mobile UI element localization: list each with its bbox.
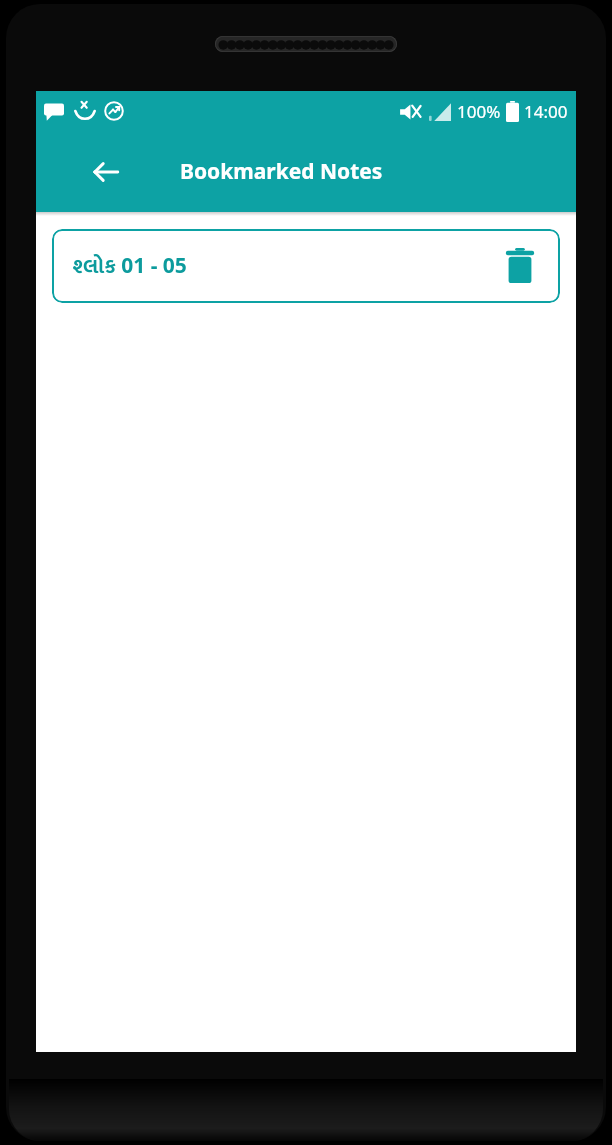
button[interactable]: Delete bookmark <box>498 244 542 288</box>
button[interactable]: શ્લોક 01 - 05 <box>52 229 560 303</box>
button[interactable]: Back <box>86 152 126 192</box>
staticText: શ્લોક 01 - 05 <box>72 249 187 284</box>
staticText: 100% <box>457 100 501 123</box>
staticText: Bookmarked Notes <box>180 157 383 186</box>
staticText: 14:00 <box>524 100 568 123</box>
